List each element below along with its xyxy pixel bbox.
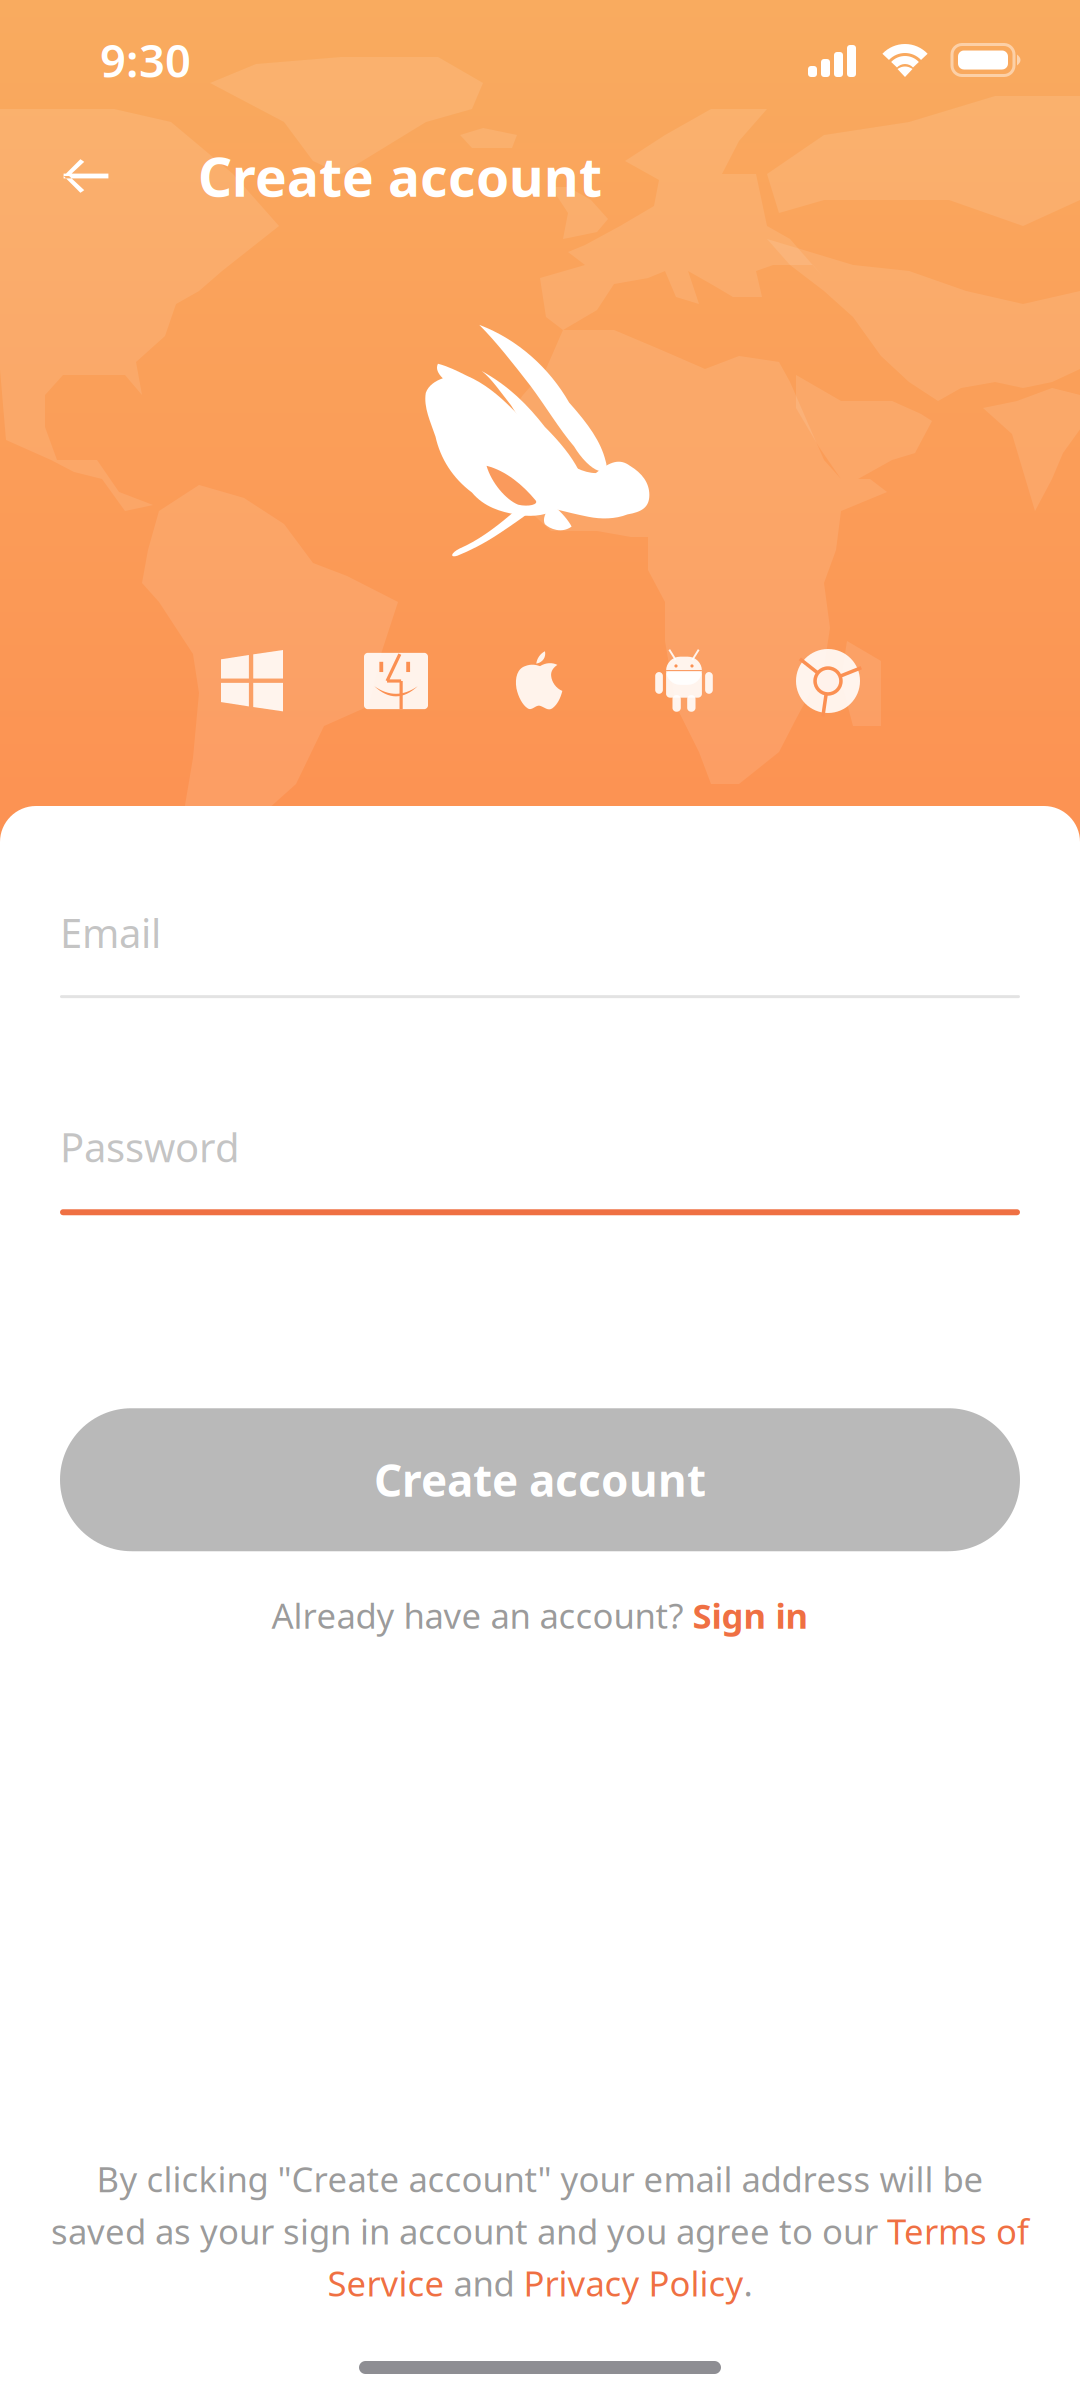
staticText: Privacy Policy [523, 2260, 743, 2306]
staticText: By clicking "Create account" your email … [96, 2156, 983, 2202]
button[interactable]: Service [327, 2260, 444, 2306]
staticText: Sign in [692, 1592, 808, 1638]
staticText: Create account [198, 141, 602, 211]
staticText: Service [327, 2260, 444, 2306]
staticText: Create account [374, 1450, 706, 1509]
staticText: saved as your sign in account and you ag… [51, 2208, 887, 2254]
button[interactable]: Privacy Policy [523, 2260, 743, 2306]
button[interactable]: Back [30, 120, 142, 232]
button[interactable]: Already have an account? [60, 1585, 1020, 1645]
staticText: . [743, 2260, 752, 2306]
button[interactable]: Create account [60, 1408, 1020, 1551]
staticText: and [444, 2260, 523, 2306]
button[interactable]: Terms of [887, 2208, 1029, 2254]
staticText: Terms of [887, 2208, 1029, 2254]
staticText: Password [60, 1120, 240, 1173]
staticText: 9:30 [100, 30, 191, 90]
staticText: Email [60, 906, 161, 959]
staticText: Already have an account? [271, 1592, 692, 1638]
